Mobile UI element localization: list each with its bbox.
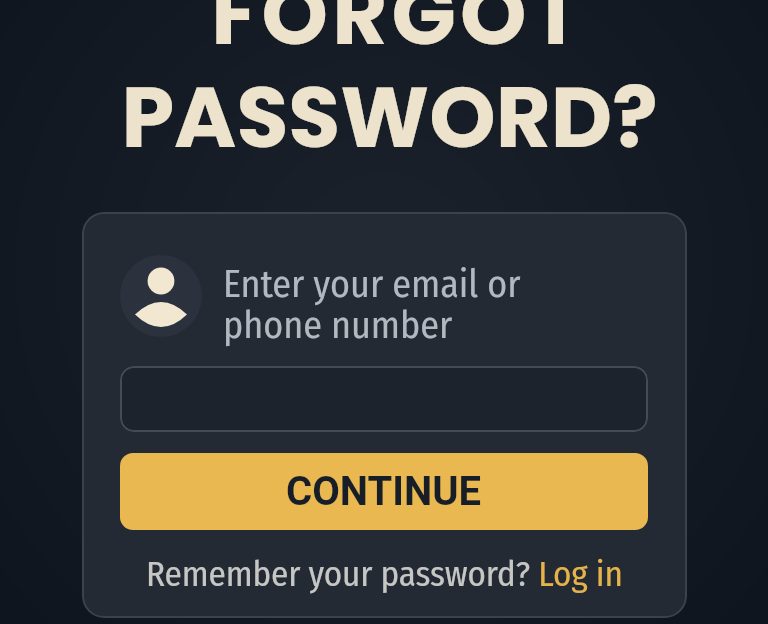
staticText: CONTINUE: [286, 468, 482, 515]
button[interactable]: [120, 366, 648, 432]
button[interactable]: Remember your password? Log in: [146, 553, 623, 595]
staticText: PASSWORD?: [121, 58, 658, 176]
staticText: FORGOT: [211, 0, 585, 73]
staticText: Remember your password? Log in: [146, 553, 623, 595]
staticText: Enter your email or phone number: [223, 261, 521, 348]
button[interactable]: CONTINUE: [120, 453, 648, 530]
